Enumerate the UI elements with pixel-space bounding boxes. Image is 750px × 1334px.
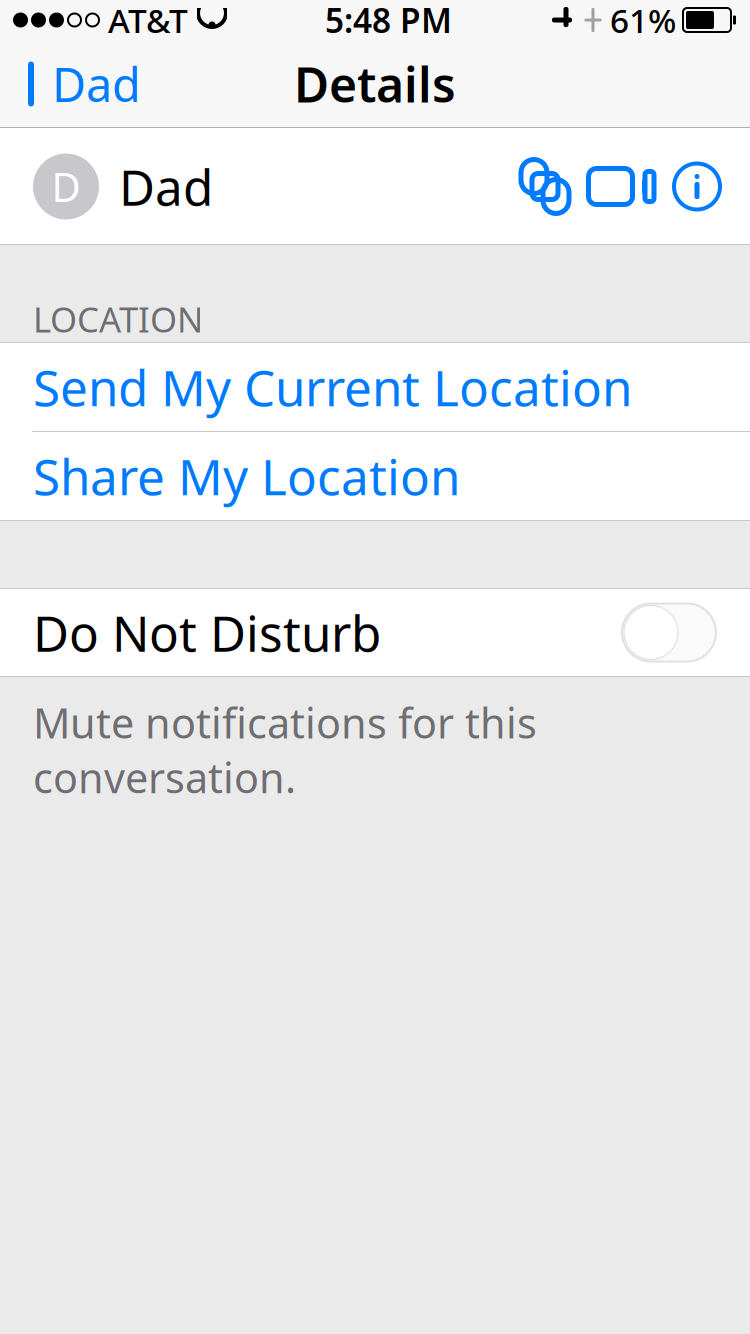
staticText: Dad [119,154,213,219]
button[interactable]: Send My Current Location [0,343,750,431]
staticText: Do Not Disturb [33,600,381,665]
button[interactable]: Dad [0,43,141,125]
button[interactable]: Call [507,148,583,224]
staticText: Dad [52,53,141,115]
staticText: Mute notifications for this conversation… [33,695,537,805]
staticText: 5:48 PM [325,0,452,42]
staticText: D [51,160,80,213]
staticText: Share My Location [33,443,460,509]
staticText: LOCATION [33,296,203,342]
button[interactable]: FaceTime [583,148,659,224]
staticText: Details [294,52,456,116]
button[interactable]: Share My Location [0,432,750,520]
button[interactable]: Do Not Disturb [0,589,750,676]
staticText: 61% [610,0,676,42]
staticText: Send My Current Location [33,354,632,420]
staticText: AT&T [108,0,188,42]
button[interactable]: Contact Info [659,148,735,224]
